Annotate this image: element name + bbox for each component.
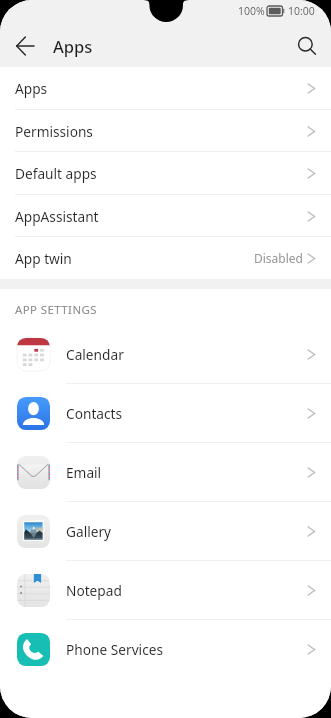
button[interactable]: Notepad (0, 561, 331, 620)
staticText: Contacts (66, 404, 123, 423)
button[interactable]: Phone Services (0, 620, 331, 679)
staticText: Email (66, 463, 102, 482)
staticText: Permissions (15, 122, 93, 141)
staticText: 10:00 (288, 4, 315, 18)
staticText: Apps (15, 79, 48, 98)
staticText: App twin (15, 249, 72, 268)
button[interactable]: AppAssistant (0, 195, 331, 237)
button[interactable]: Search (283, 24, 331, 67)
staticText: Gallery (66, 522, 112, 541)
button[interactable]: Apps (0, 67, 331, 110)
staticText: Phone Services (66, 640, 163, 659)
button[interactable]: Default apps (0, 152, 331, 195)
staticText: Disabled (254, 250, 303, 266)
button[interactable]: Gallery (0, 502, 331, 561)
staticText: Calendar (66, 345, 124, 364)
staticText: APP SETTINGS (15, 302, 97, 318)
staticText: Default apps (15, 164, 97, 183)
button[interactable]: Calendar (0, 325, 331, 384)
button[interactable]: Permissions (0, 110, 331, 152)
button[interactable]: Email (0, 443, 331, 502)
staticText: AppAssistant (15, 207, 99, 226)
button[interactable]: Back (0, 24, 50, 67)
staticText: 100% (238, 4, 265, 18)
staticText: Notepad (66, 581, 122, 600)
button[interactable]: App twin (0, 237, 331, 279)
staticText: Apps (53, 35, 93, 57)
button[interactable]: Contacts (0, 384, 331, 443)
